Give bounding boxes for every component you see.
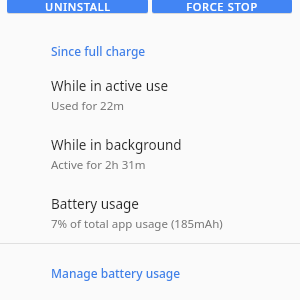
staticText: Battery usage bbox=[51, 195, 139, 213]
staticText: Active for 2h 31m bbox=[51, 157, 146, 173]
button[interactable]: Manage battery usage bbox=[0, 263, 300, 283]
button[interactable]: UNINSTALL bbox=[7, 0, 148, 13]
button[interactable]: While in active use bbox=[0, 61, 300, 118]
staticText: Used for 22m bbox=[51, 98, 125, 114]
button[interactable]: Since full charge bbox=[0, 41, 300, 61]
staticText: Since full charge bbox=[51, 43, 146, 59]
button[interactable]: FORCE STOP bbox=[152, 0, 292, 13]
staticText: While in background bbox=[51, 136, 182, 154]
staticText: UNINSTALL bbox=[45, 0, 111, 13]
staticText: FORCE STOP bbox=[186, 0, 258, 13]
staticText: While in active use bbox=[51, 77, 169, 95]
staticText: 7% of total app usage (185mAh) bbox=[51, 216, 223, 232]
button[interactable]: Battery usage bbox=[0, 177, 300, 236]
staticText: Manage battery usage bbox=[51, 265, 181, 281]
button[interactable]: While in background bbox=[0, 118, 300, 177]
